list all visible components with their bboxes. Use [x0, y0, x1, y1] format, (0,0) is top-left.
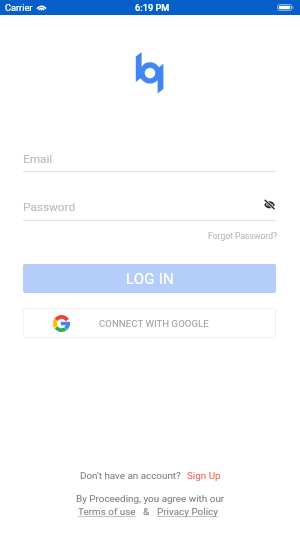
staticText: & — [143, 506, 150, 518]
staticText: Forgot Password? — [208, 231, 278, 241]
staticText: Carrier — [5, 2, 33, 13]
staticText: CONNECT WITH GOOGLE — [99, 318, 209, 329]
staticText: Password — [23, 200, 76, 214]
button[interactable]: Privacy Policy — [157, 506, 218, 518]
button[interactable]: CONNECT WITH GOOGLE — [23, 308, 276, 338]
staticText: By Proceeding, you agree with our — [76, 493, 225, 505]
button[interactable]: Show password — [261, 196, 277, 212]
button[interactable]: Forgot Password? — [208, 231, 278, 241]
staticText: LOG IN — [126, 270, 174, 288]
button[interactable]: LOG IN — [23, 264, 276, 293]
staticText: Don't have an account? — [80, 470, 181, 482]
staticText: Sign Up — [187, 470, 221, 482]
button[interactable]: Sign Up — [187, 470, 221, 482]
button[interactable]: Terms of use — [78, 506, 136, 518]
staticText: Email — [23, 152, 53, 166]
staticText: 6:19 PM — [135, 2, 170, 13]
staticText: Privacy Policy — [157, 506, 218, 518]
staticText: Terms of use — [78, 506, 136, 518]
